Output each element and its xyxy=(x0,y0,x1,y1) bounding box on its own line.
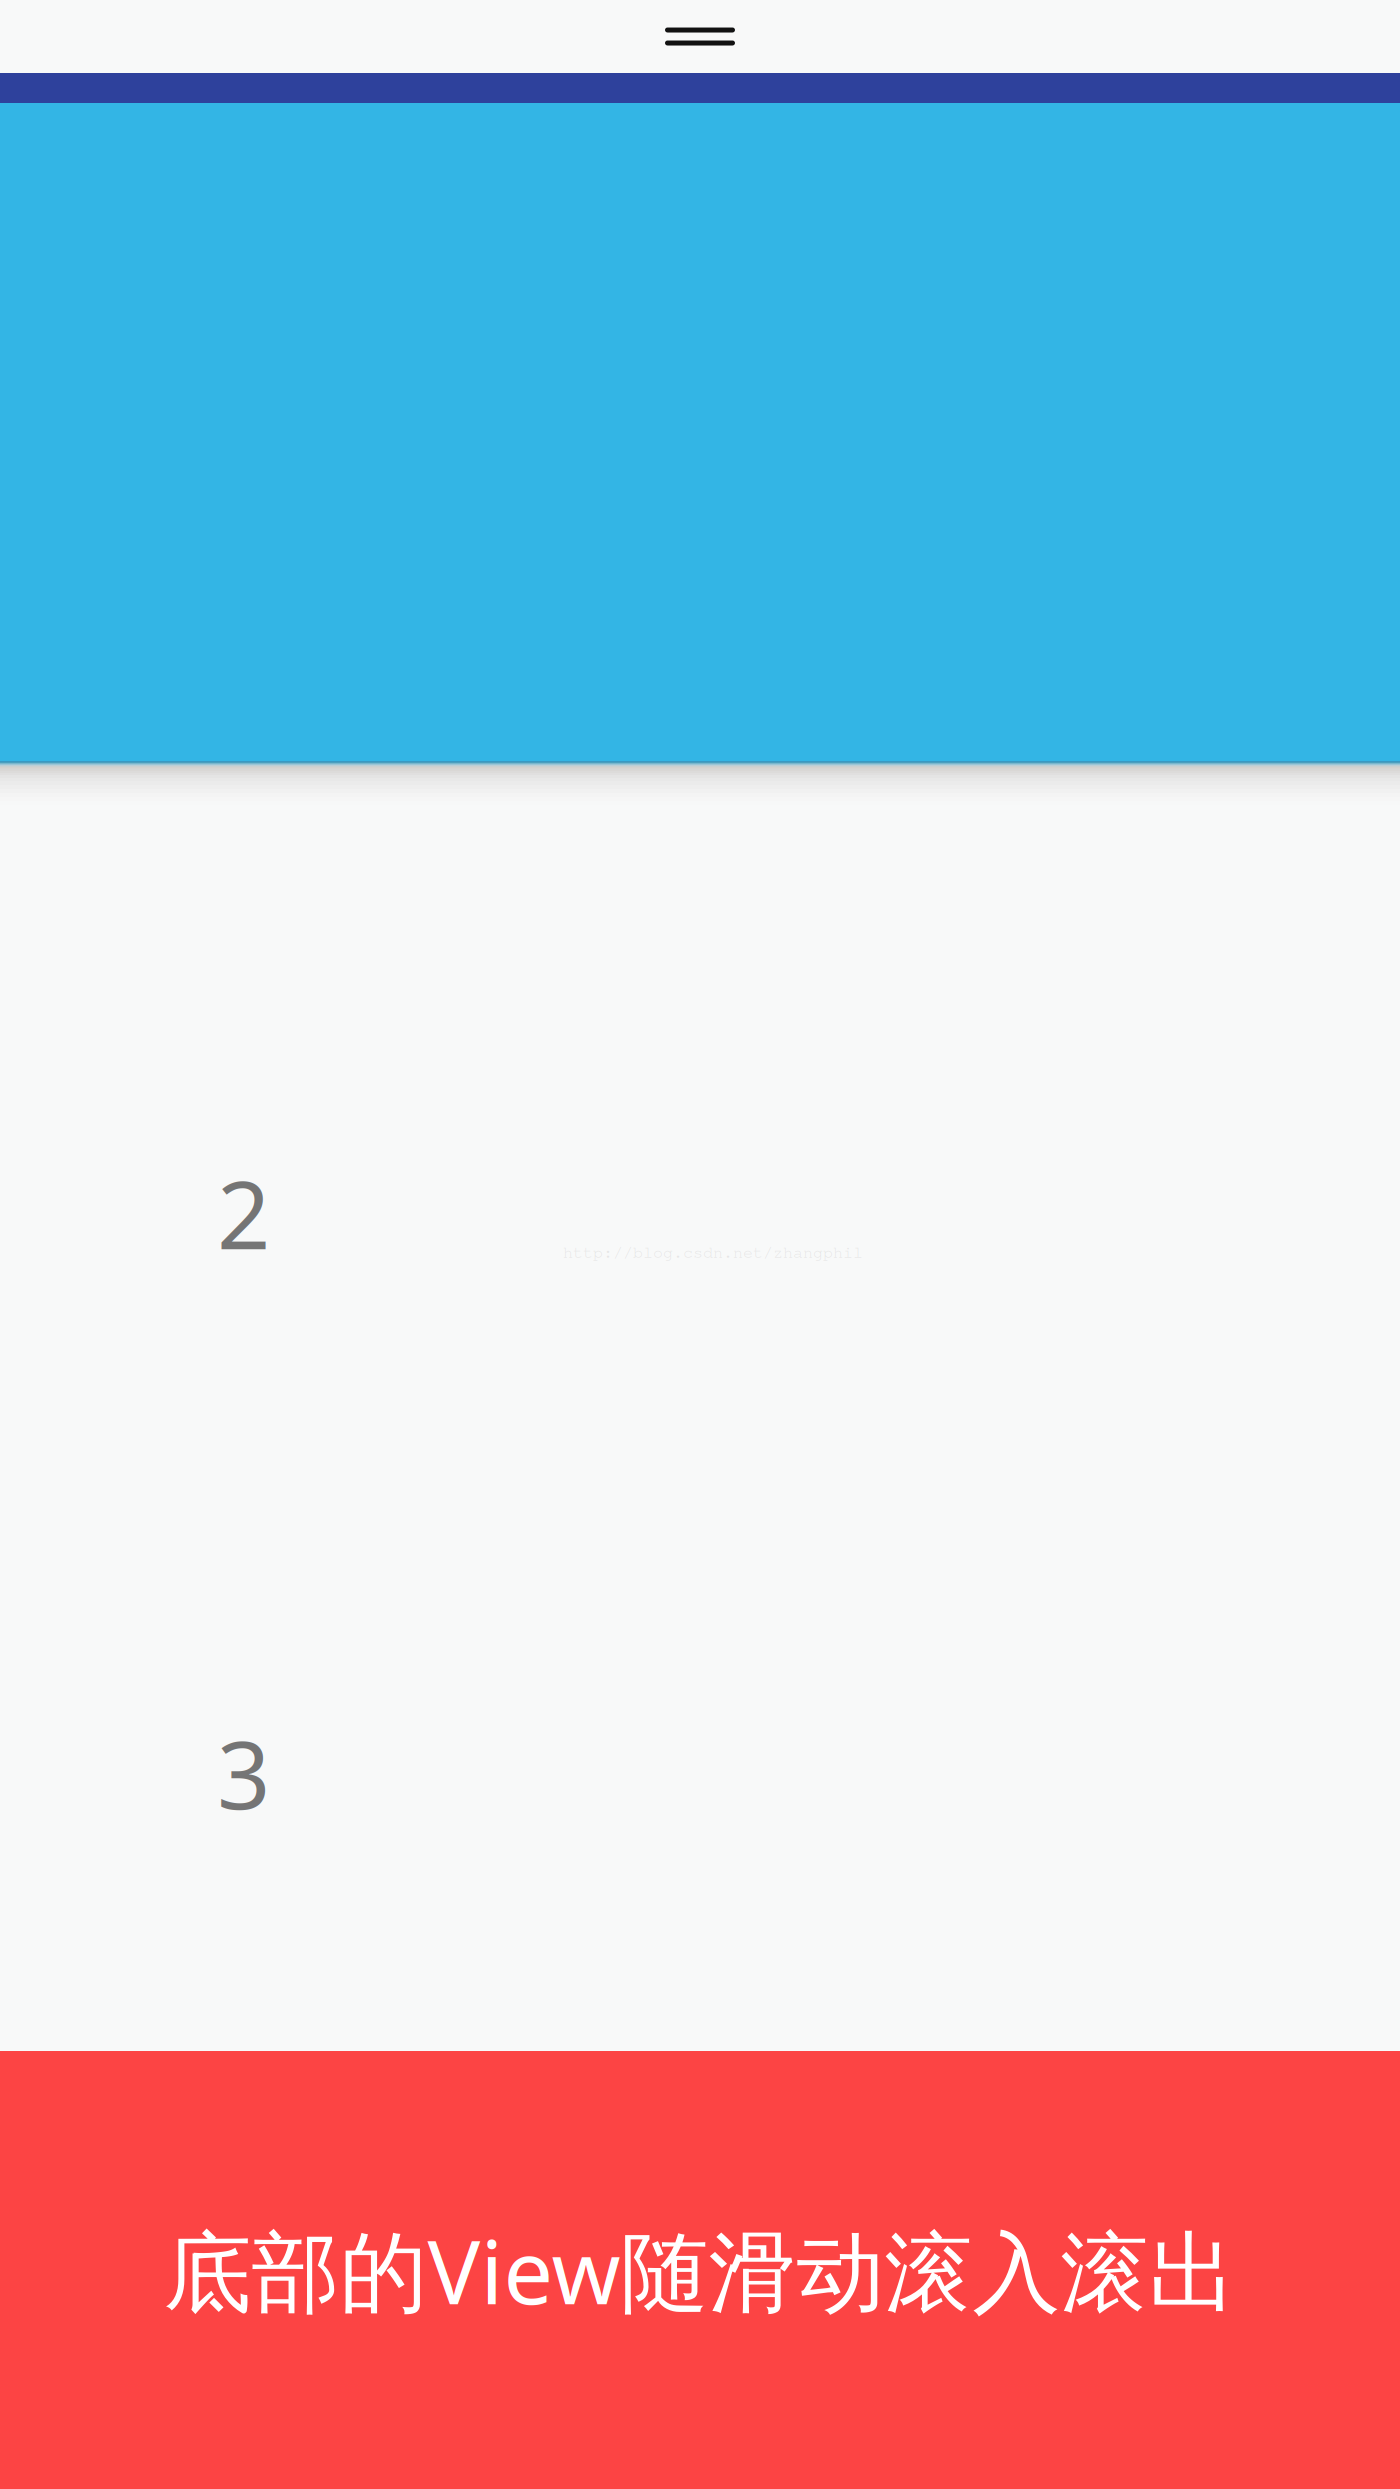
button[interactable]: Drag handle xyxy=(0,0,1400,73)
staticText: 3 xyxy=(217,1711,270,1835)
staticText: 2 xyxy=(217,1151,270,1275)
button[interactable]: 3 xyxy=(0,1713,1400,1833)
staticText: 底部的View随滑动滚入滚出 xyxy=(163,2212,1236,2328)
staticText: http://blog.csdn.net/zhangphil xyxy=(563,1242,863,1262)
button[interactable]: 2 xyxy=(0,1153,1400,1273)
